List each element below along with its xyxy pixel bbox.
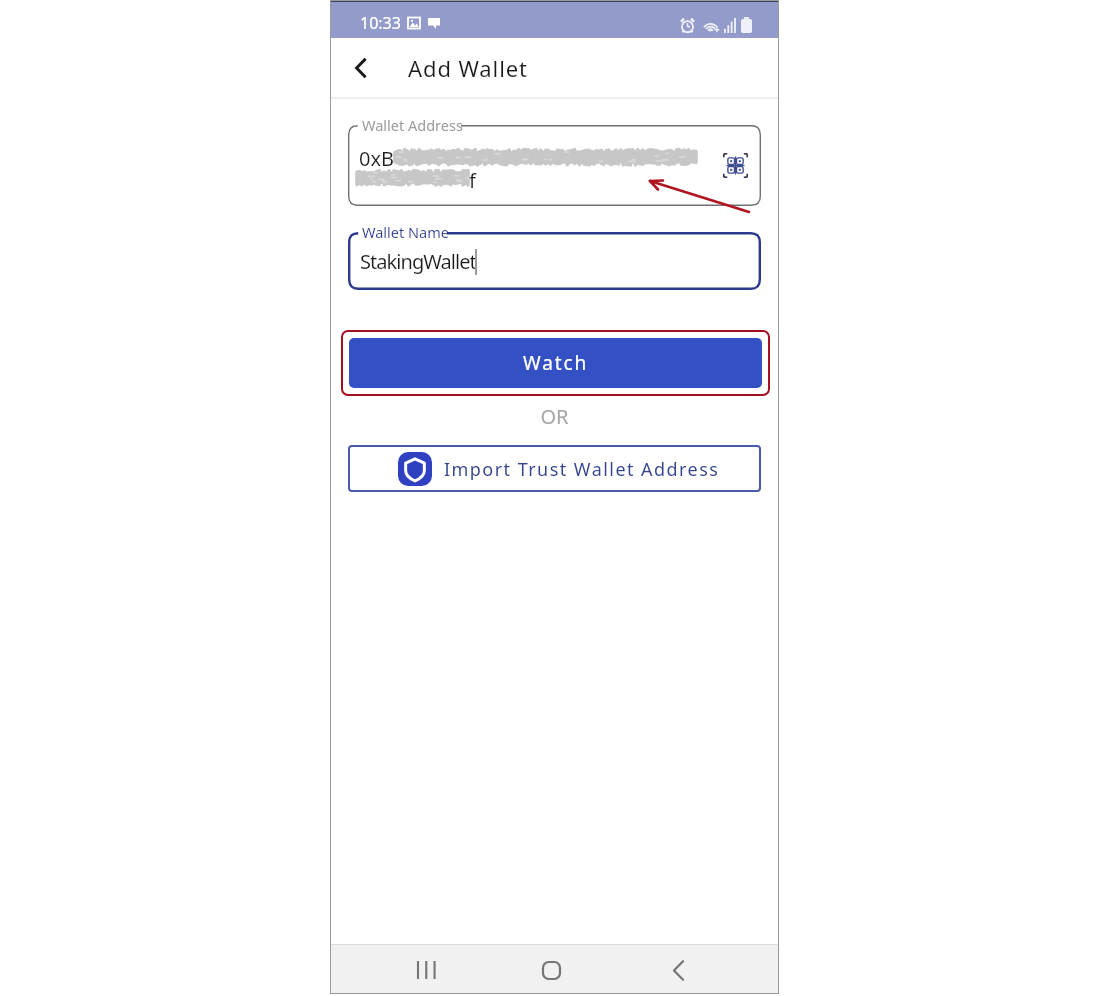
staticText: 10:33: [360, 12, 401, 34]
button[interactable]: Watch: [349, 338, 762, 388]
staticText: Import Trust Wallet Address: [444, 457, 720, 482]
staticText: Wallet Address: [362, 115, 463, 135]
staticText: Add Wallet: [408, 53, 528, 83]
button[interactable]: Home: [528, 947, 574, 993]
staticText: StakingWallet: [360, 248, 476, 275]
staticText: Wallet Name: [362, 222, 449, 242]
staticText: OR: [330, 403, 779, 430]
staticText: f: [469, 167, 476, 194]
staticText: Watch: [523, 350, 589, 376]
button[interactable]: Recent apps: [403, 947, 449, 993]
button[interactable]: Back: [340, 47, 382, 89]
button[interactable]: Import Trust Wallet Address: [348, 445, 761, 492]
button[interactable]: Back: [655, 947, 701, 993]
button[interactable]: Scan QR code: [717, 147, 754, 184]
staticText: 0xB: [359, 145, 395, 172]
